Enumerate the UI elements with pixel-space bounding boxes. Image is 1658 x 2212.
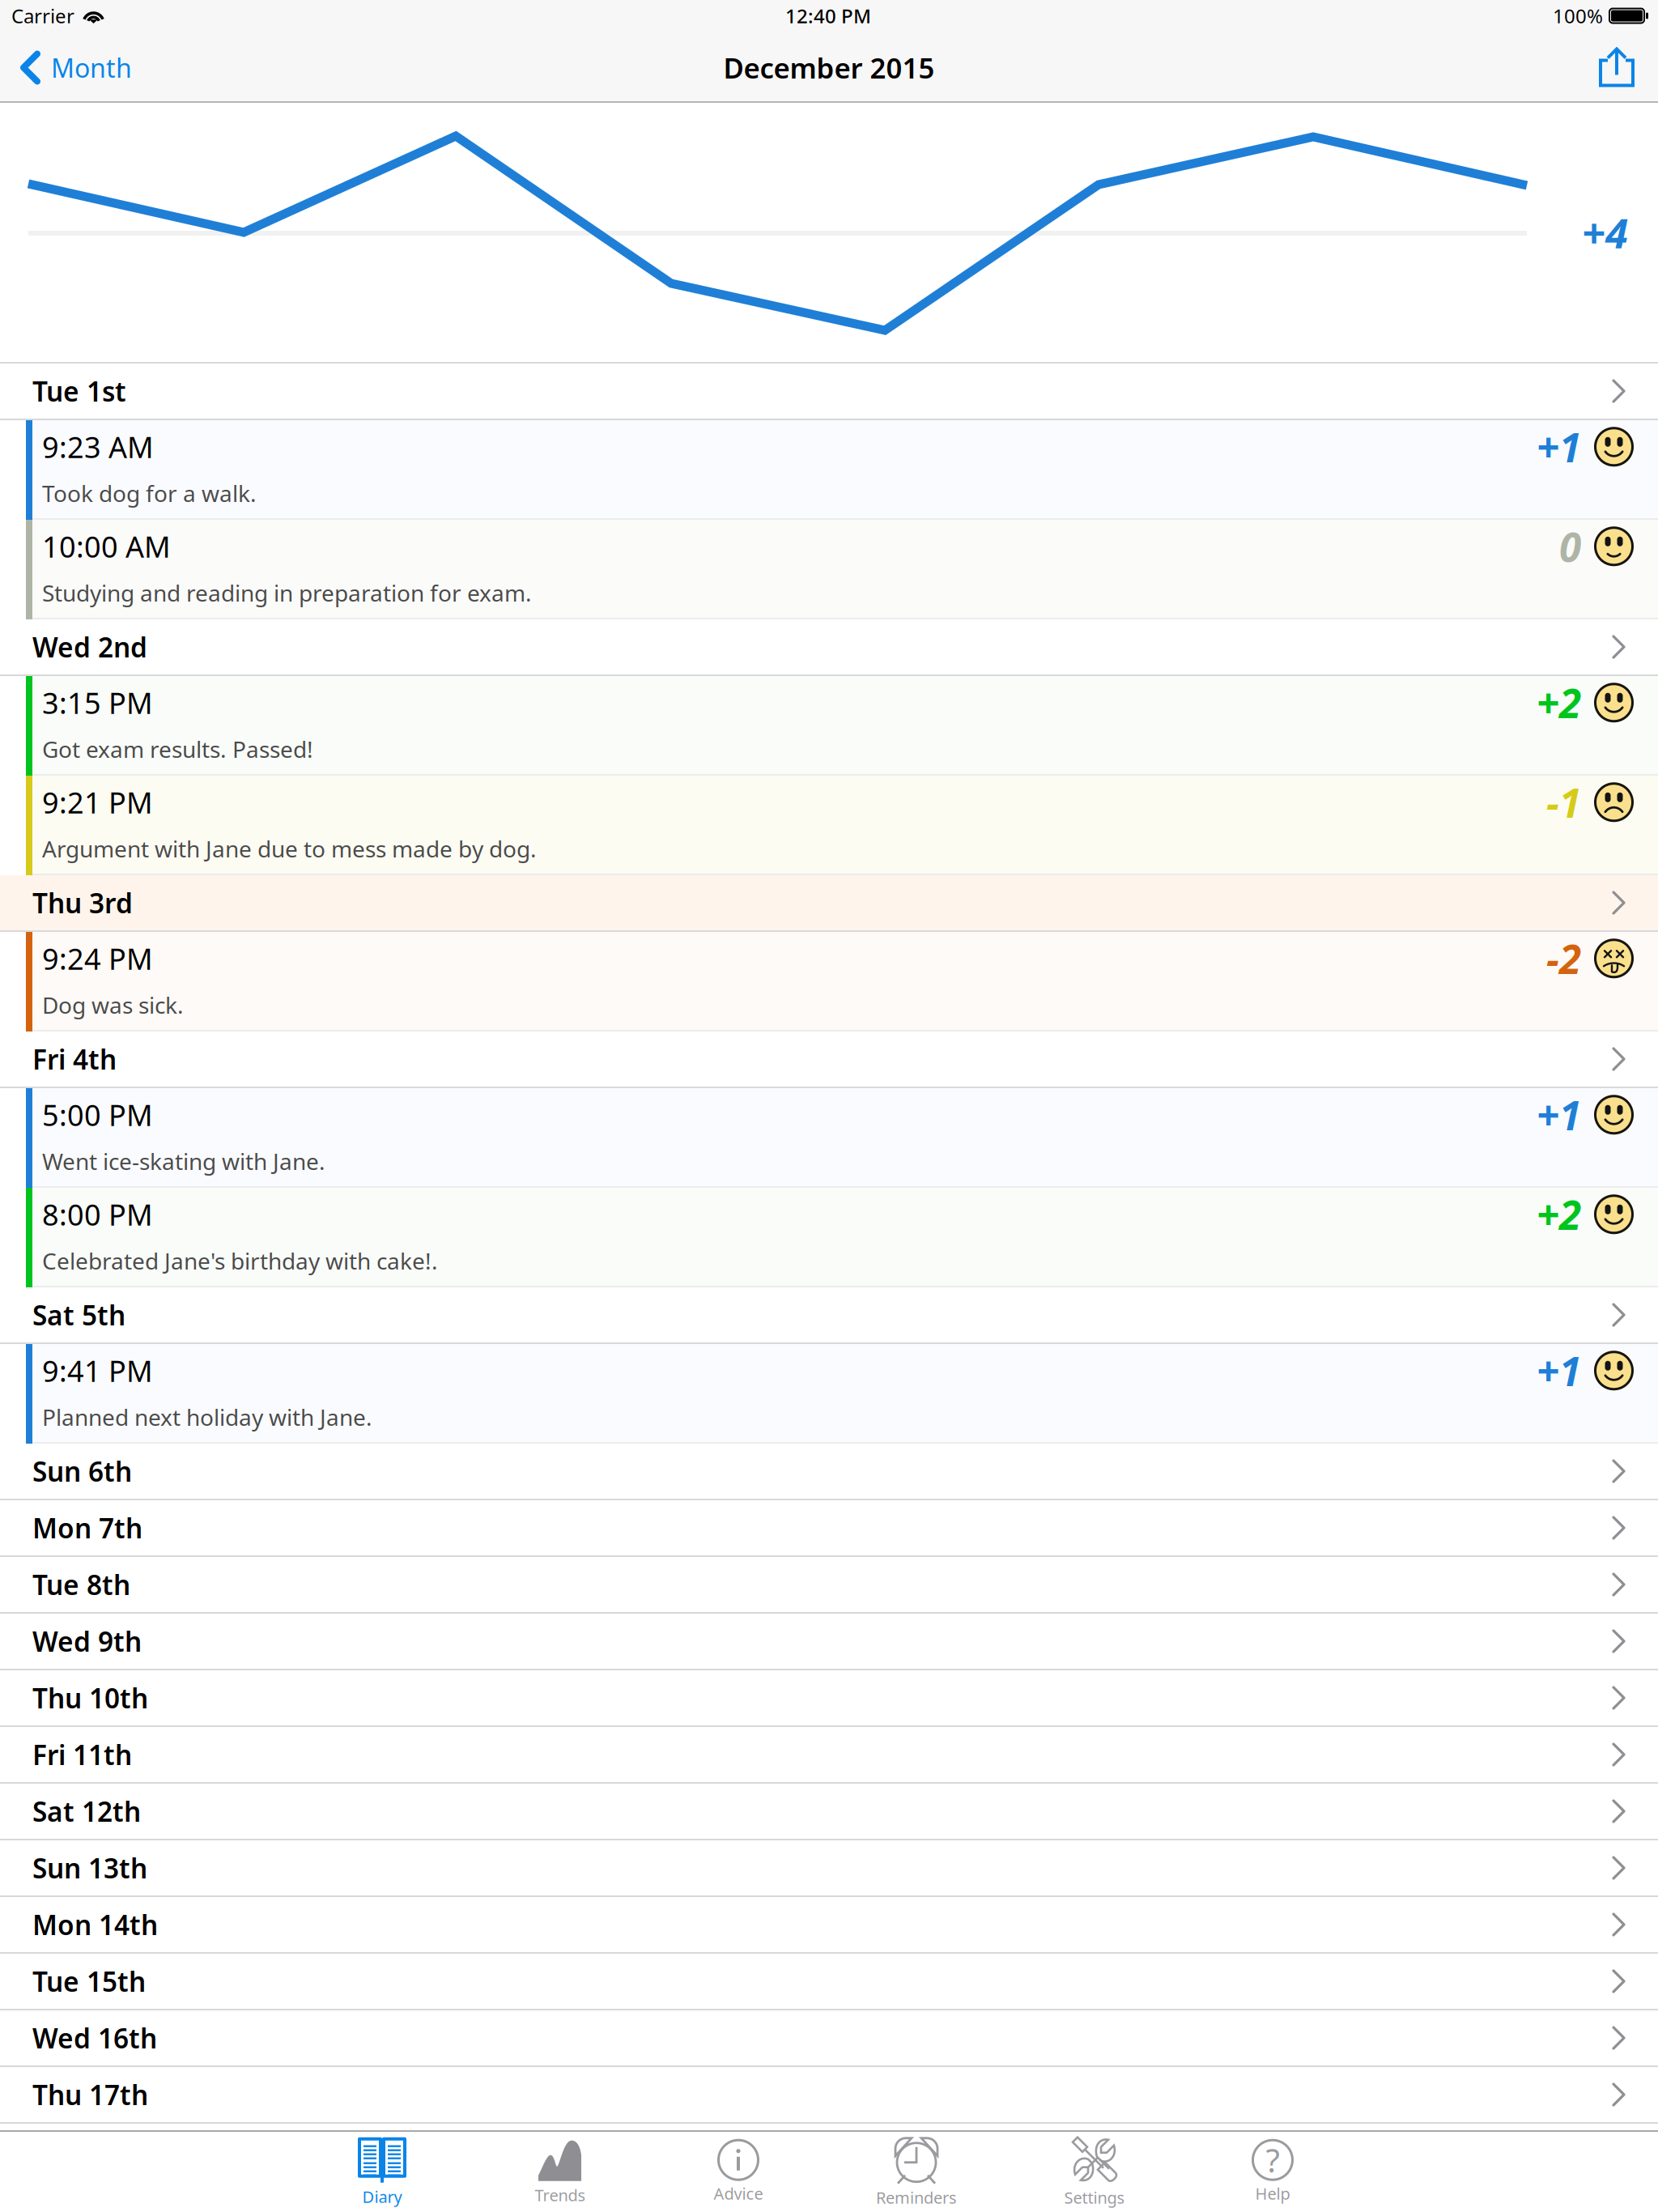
staticText: Thu 3rd — [32, 885, 133, 921]
staticText: 9:24 PM — [42, 939, 153, 978]
button[interactable]: Diary — [293, 2132, 471, 2212]
button[interactable]: Thu 10th — [0, 1670, 1658, 1727]
button[interactable]: Sun 13th — [0, 1840, 1658, 1897]
staticText: Took dog for a walk. — [42, 478, 257, 508]
staticText: Thu 17th — [32, 2077, 148, 2113]
staticText: -2 — [1546, 932, 1581, 985]
button[interactable]: Fri 4th — [0, 1032, 1658, 1088]
staticText: Celebrated Jane's birthday with cake!. — [42, 1246, 438, 1276]
staticText: 9:41 PM — [42, 1351, 153, 1390]
staticText: Tue 1st — [32, 373, 126, 409]
staticText: Diary — [362, 2186, 402, 2207]
button[interactable]: Tue 1st — [0, 364, 1658, 420]
staticText: 12:40 PM — [785, 3, 871, 29]
button[interactable]: 5:00 PM — [0, 1088, 1658, 1188]
staticText: +4 — [1582, 205, 1628, 260]
staticText: -1 — [1546, 776, 1581, 829]
staticText: ? — [1266, 2138, 1280, 2181]
button[interactable]: Settings — [1005, 2132, 1184, 2212]
staticText: Sat 5th — [32, 1297, 125, 1333]
staticText: +2 — [1537, 1188, 1581, 1241]
staticText: Month — [51, 50, 132, 85]
button[interactable]: Thu 3rd — [0, 875, 1658, 932]
staticText: Mon 7th — [32, 1510, 142, 1546]
button[interactable]: Mon 14th — [0, 1897, 1658, 1954]
staticText: +1 — [1537, 420, 1581, 473]
button[interactable]: 10:00 AM — [0, 520, 1658, 619]
staticText: Fri 11th — [32, 1737, 132, 1773]
staticText: Planned next holiday with Jane. — [42, 1402, 372, 1432]
button[interactable]: Tue 8th — [0, 1557, 1658, 1614]
button[interactable]: Sat 12th — [0, 1784, 1658, 1840]
staticText: Got exam results. Passed! — [42, 734, 313, 764]
staticText: 5:00 PM — [42, 1095, 153, 1134]
staticText: Wed 2nd — [32, 629, 147, 665]
button[interactable]: 9:24 PM — [0, 932, 1658, 1032]
staticText: December 2015 — [723, 49, 935, 86]
staticText: Help — [1255, 2183, 1290, 2204]
button[interactable]: Wed 9th — [0, 1614, 1658, 1670]
staticText: Tue 8th — [32, 1567, 130, 1602]
staticText: Tue 15th — [32, 1963, 146, 1999]
staticText: Wed 9th — [32, 1623, 142, 1659]
button[interactable]: ? — [1184, 2132, 1362, 2212]
button[interactable]: 8:00 PM — [0, 1188, 1658, 1287]
staticText: Fri 4th — [32, 1041, 117, 1077]
staticText: Carrier — [11, 3, 74, 29]
staticText: 8:00 PM — [42, 1195, 153, 1234]
staticText: Settings — [1064, 2187, 1125, 2208]
button[interactable]: Wed 2nd — [0, 619, 1658, 676]
staticText: +2 — [1537, 676, 1581, 729]
staticText: Mon 14th — [32, 1907, 158, 1943]
button[interactable]: 9:21 PM — [0, 776, 1658, 875]
staticText: Argument with Jane due to mess made by d… — [42, 834, 537, 864]
button[interactable]: Trends — [471, 2132, 649, 2212]
staticText: Trends — [535, 2184, 586, 2206]
staticText: Thu 10th — [32, 1680, 148, 1716]
button[interactable]: Fri 11th — [0, 1727, 1658, 1784]
button[interactable]: Sat 5th — [0, 1287, 1658, 1344]
button[interactable]: Sun 6th — [0, 1444, 1658, 1500]
staticText: Went ice-skating with Jane. — [42, 1146, 325, 1176]
staticText: 0 — [1559, 520, 1581, 573]
button[interactable]: 9:23 AM — [0, 420, 1658, 520]
staticText: Reminders — [876, 2187, 957, 2208]
staticText: 3:15 PM — [42, 683, 153, 722]
staticText: 9:21 PM — [42, 783, 153, 822]
staticText: 10:00 AM — [42, 527, 171, 566]
staticText: Wed 16th — [32, 2020, 157, 2056]
button[interactable]: Thu 17th — [0, 2067, 1658, 2124]
staticText: Sat 12th — [32, 1793, 141, 1829]
button[interactable]: 3:15 PM — [0, 676, 1658, 776]
staticText: +1 — [1537, 1088, 1581, 1141]
staticText: Advice — [714, 2183, 763, 2204]
button[interactable]: Wed 16th — [0, 2010, 1658, 2067]
staticText: Sun 6th — [32, 1453, 132, 1489]
staticText: Studying and reading in preparation for … — [42, 578, 532, 608]
button[interactable]: 9:41 PM — [0, 1344, 1658, 1444]
staticText: 100% — [1553, 3, 1603, 29]
button[interactable]: Mon 7th — [0, 1500, 1658, 1557]
button[interactable]: Month — [0, 34, 150, 101]
button[interactable]: Advice — [649, 2132, 827, 2212]
button[interactable]: Tue 15th — [0, 1954, 1658, 2010]
staticText: Dog was sick. — [42, 990, 184, 1020]
button[interactable]: Reminders — [827, 2132, 1005, 2212]
staticText: Sun 13th — [32, 1850, 147, 1886]
button[interactable]: Share — [1575, 34, 1658, 101]
staticText: +1 — [1537, 1344, 1581, 1397]
staticText: 9:23 AM — [42, 427, 154, 466]
